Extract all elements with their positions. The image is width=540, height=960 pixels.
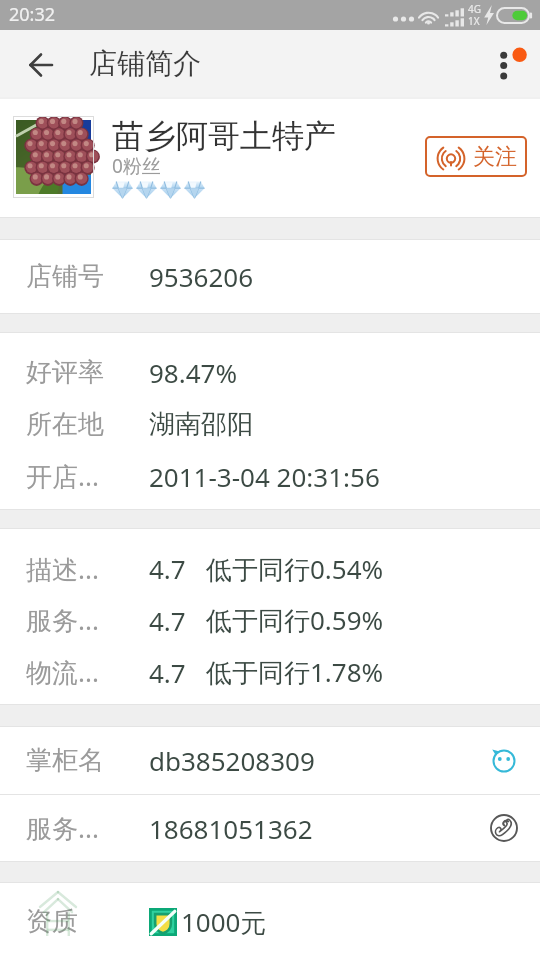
staticText: 0粉丝	[112, 153, 161, 179]
button[interactable]: 服务...	[0, 795, 540, 861]
staticText: 描述...	[26, 551, 149, 587]
button[interactable]: 店铺号	[0, 240, 540, 313]
staticText: db385208309	[149, 743, 315, 778]
staticText: 低于同行0.59%	[206, 602, 384, 638]
staticText: 苗乡阿哥土特产	[112, 116, 336, 156]
button[interactable]: 资质	[0, 883, 540, 960]
staticText: 20:32	[9, 2, 56, 27]
staticText: 4.7	[149, 603, 186, 638]
staticText: 4.7	[149, 551, 186, 586]
staticText: 服务...	[26, 602, 149, 638]
button[interactable]: 掌柜名	[0, 727, 540, 794]
staticText: 资质	[26, 905, 149, 938]
staticText: 店铺简介	[89, 46, 201, 81]
button[interactable]: More options	[480, 30, 536, 97]
staticText: 4.7	[149, 655, 186, 690]
staticText: 低于同行1.78%	[206, 654, 384, 690]
button[interactable]: Call	[487, 811, 521, 845]
staticText: 物流...	[26, 654, 149, 690]
staticText: 18681051362	[149, 811, 313, 846]
staticText: 低于同行0.54%	[206, 551, 384, 587]
button[interactable]: Chat	[487, 744, 521, 778]
staticText: 关注	[473, 143, 517, 171]
button[interactable]: Back	[0, 30, 62, 97]
button[interactable]: 描述...	[0, 543, 540, 594]
staticText: 1000元	[181, 904, 267, 940]
staticText: 98.47%	[149, 355, 238, 390]
staticText: 店铺号	[26, 260, 149, 293]
staticText: 湖南邵阳	[149, 408, 253, 441]
staticText: 2011-3-04 20:31:56	[149, 459, 380, 494]
staticText: 掌柜名	[26, 744, 149, 777]
button[interactable]: 所在地	[0, 398, 540, 450]
staticText: 开店...	[26, 458, 149, 494]
staticText: 1X	[468, 14, 480, 28]
button[interactable]: 服务...	[0, 594, 540, 646]
button[interactable]: 开店...	[0, 450, 540, 502]
staticText: 4G	[468, 2, 481, 16]
staticText: 所在地	[26, 408, 149, 441]
staticText: 9536206	[149, 259, 254, 294]
staticText: 好评率	[26, 356, 149, 389]
staticText: 服务...	[26, 810, 149, 846]
button[interactable]: 好评率	[0, 347, 540, 398]
button[interactable]: 物流...	[0, 646, 540, 698]
button[interactable]: 关注	[425, 136, 527, 177]
